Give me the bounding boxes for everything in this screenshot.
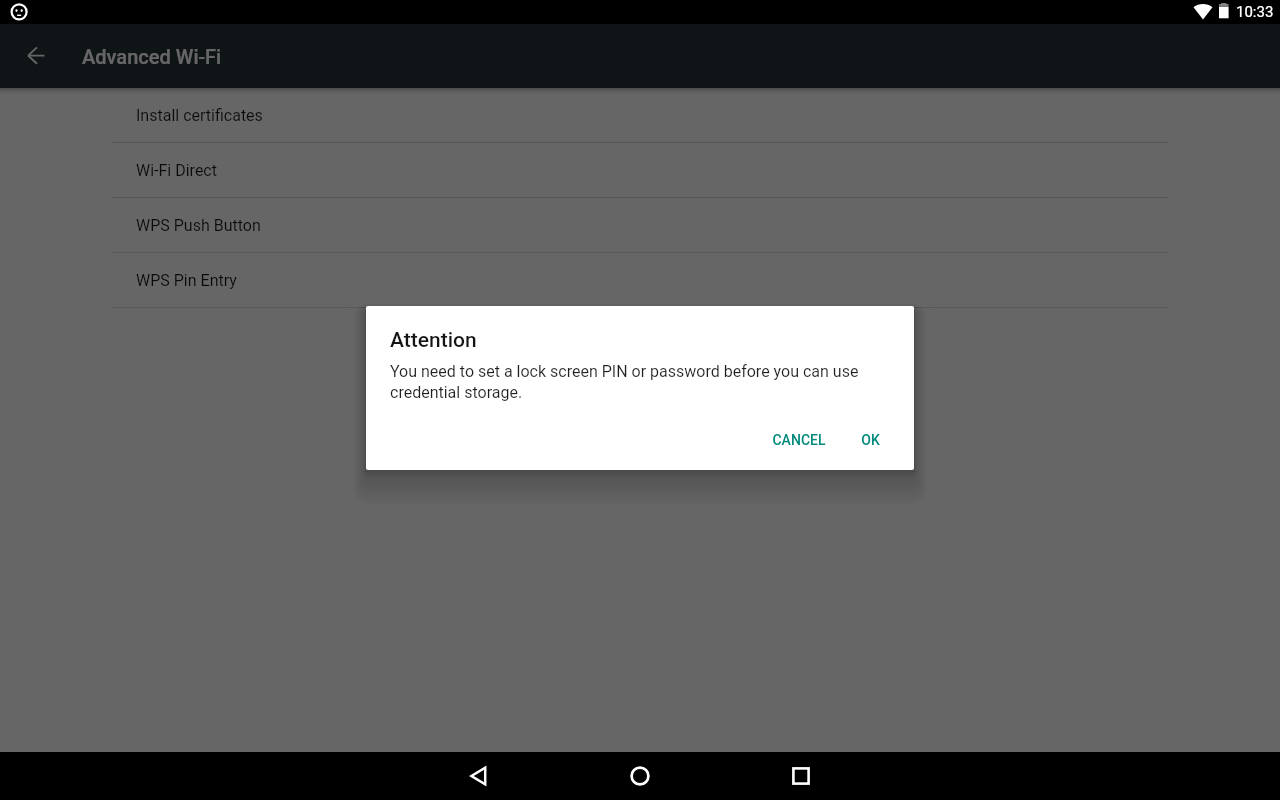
staticText: 10:33 [1236,3,1274,21]
staticText: Install certificates [136,106,263,125]
staticText: Wi-Fi Direct [136,161,217,180]
button[interactable]: CANCEL [764,426,834,454]
button[interactable]: OK [853,426,888,454]
button[interactable]: WPS Pin Entry [0,253,1280,308]
staticText: CANCEL [772,432,826,448]
staticText: You need to set a lock screen PIN or pas… [390,362,880,402]
button[interactable]: Wi-Fi Direct [0,143,1280,198]
staticText: WPS Pin Entry [136,271,237,290]
staticText: Attention [390,328,477,353]
other: Battery [1219,3,1230,19]
button[interactable]: Back [450,752,506,800]
button[interactable]: Recent apps [773,752,829,800]
button[interactable]: WPS Push Button [0,198,1280,253]
other: Wi-Fi signal [1192,3,1214,21]
staticText: WPS Push Button [136,216,261,235]
staticText: OK [861,432,880,448]
other: Notification [9,2,30,23]
staticText: Advanced Wi-Fi [82,45,222,68]
button[interactable]: Install certificates [0,88,1280,143]
button[interactable]: Home [612,752,668,800]
button[interactable]: Navigate up [12,32,60,80]
